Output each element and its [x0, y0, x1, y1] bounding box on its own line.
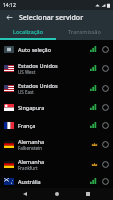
button[interactable]: Estados Unidos	[0, 78, 113, 98]
staticText: Localização	[13, 28, 44, 35]
staticText: Frankfurt	[18, 165, 38, 171]
button[interactable]: França	[0, 116, 113, 134]
staticText: Estados Unidos	[18, 62, 58, 69]
button[interactable]: Início	[50, 188, 64, 200]
staticText: Alemanha	[18, 138, 45, 145]
button[interactable]: Localização	[0, 25, 56, 38]
staticText: Transmissão	[68, 28, 101, 35]
button[interactable]: Transmissão	[56, 25, 113, 38]
button[interactable]: Voltar	[18, 188, 32, 200]
staticText: Austrália	[18, 178, 41, 185]
button[interactable]: Voltar	[4, 12, 15, 23]
staticText: França	[18, 122, 36, 129]
staticText: Alemanha	[18, 158, 45, 165]
button[interactable]: Estados Unidos	[0, 58, 113, 78]
staticText: US East	[18, 89, 34, 95]
button[interactable]: Alemanha	[0, 134, 113, 154]
button[interactable]: Singapura	[0, 98, 113, 116]
staticText: Auto seleção	[18, 46, 51, 53]
staticText: Singapura	[18, 104, 45, 111]
staticText: US West	[18, 69, 36, 75]
button[interactable]: Alemanha	[0, 154, 113, 174]
button[interactable]: Recentes	[81, 188, 95, 200]
staticText: 14:12	[3, 2, 16, 9]
staticText: Estados Unidos	[18, 82, 58, 89]
staticText: Falkenstein	[18, 145, 43, 151]
button[interactable]: Auto seleção	[0, 40, 113, 58]
staticText: Selecionar servidor	[19, 13, 84, 23]
button[interactable]: Austrália	[0, 174, 113, 188]
